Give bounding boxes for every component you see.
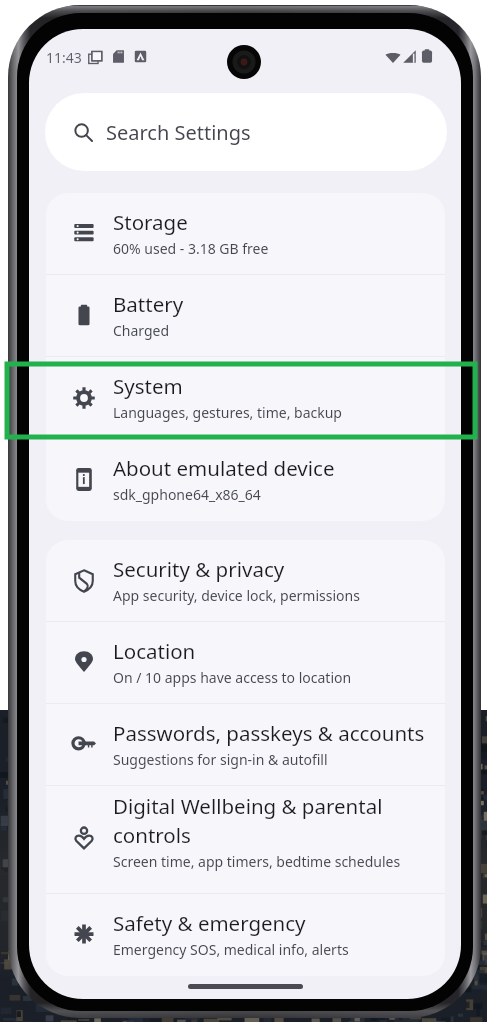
staticText: Search Settings: [106, 119, 251, 146]
button[interactable]: Battery: [46, 275, 445, 357]
staticText: Security & privacy: [113, 555, 285, 583]
button[interactable]: Safety & emergency: [46, 894, 445, 976]
button[interactable]: Location: [46, 622, 445, 704]
staticText: Location: [113, 637, 196, 665]
staticText: Languages, gestures, time, backup: [113, 403, 342, 422]
staticText: System: [113, 372, 183, 400]
staticText: Charged: [113, 321, 170, 340]
staticText: sdk_gphone64_x86_64: [113, 485, 261, 504]
staticText: About emulated device: [113, 454, 335, 482]
staticText: App security, device lock, permissions: [113, 586, 360, 605]
staticText: Safety & emergency: [113, 909, 306, 937]
staticText: 60% used - 3.18 GB free: [113, 239, 269, 258]
staticText: On / 10 apps have access to location: [113, 668, 352, 687]
button[interactable]: Passwords, passkeys & accounts: [46, 704, 445, 786]
staticText: Screen time, app timers, bedtime schedul…: [113, 852, 401, 871]
button[interactable]: System: [46, 357, 445, 439]
staticText: Suggestions for sign-in & autofill: [113, 750, 328, 769]
staticText: Digital Wellbeing & parental controls: [113, 792, 438, 849]
button[interactable]: Digital Wellbeing & parental controls: [46, 786, 445, 894]
staticText: Storage: [113, 208, 188, 236]
staticText: 11:43: [46, 48, 82, 67]
button[interactable]: Storage: [46, 193, 445, 275]
button[interactable]: About emulated device: [46, 439, 445, 521]
staticText: Passwords, passkeys & accounts: [113, 719, 425, 747]
staticText: Emergency SOS, medical info, alerts: [113, 940, 349, 959]
button[interactable]: Search Settings: [45, 93, 447, 171]
button[interactable]: Security & privacy: [46, 540, 445, 622]
staticText: Battery: [113, 290, 184, 318]
